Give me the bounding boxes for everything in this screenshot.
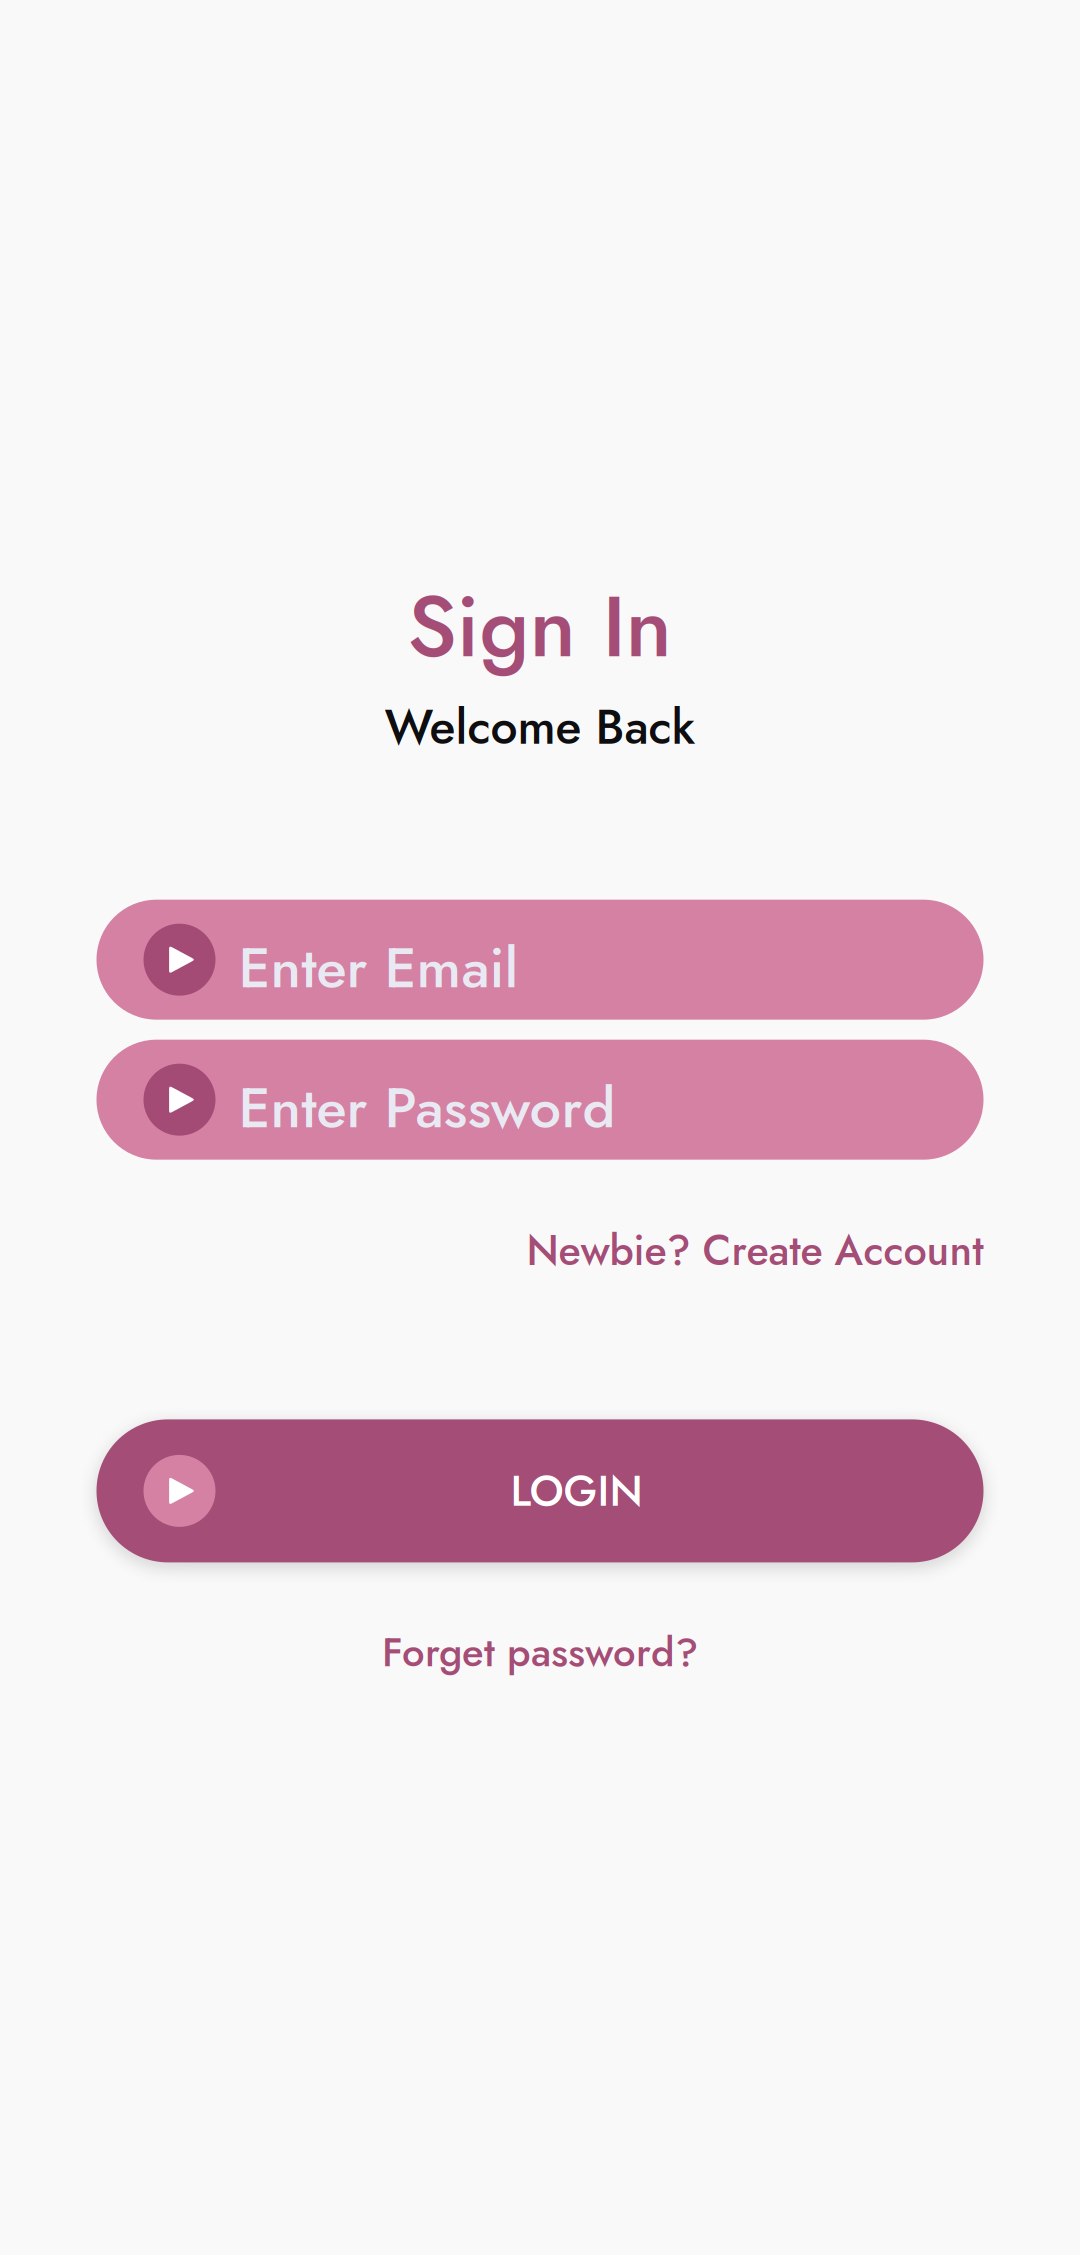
staticText: Enter Email	[238, 927, 518, 1008]
button[interactable]: Newbie? Create Account	[526, 1221, 983, 1280]
button[interactable]: LOGIN	[96, 1419, 983, 1562]
staticText: Newbie? Create Account	[526, 1221, 983, 1280]
staticText: Enter Password	[238, 1067, 615, 1148]
button[interactable]: Enter Password	[96, 1040, 983, 1160]
staticText: LOGIN	[510, 1460, 642, 1522]
staticText: Forget password?	[382, 1623, 698, 1681]
staticText: Sign In	[407, 565, 672, 688]
staticText: Welcome Back	[384, 692, 695, 762]
button[interactable]: Forget password?	[382, 1623, 698, 1681]
button[interactable]: Enter Email	[96, 900, 983, 1020]
